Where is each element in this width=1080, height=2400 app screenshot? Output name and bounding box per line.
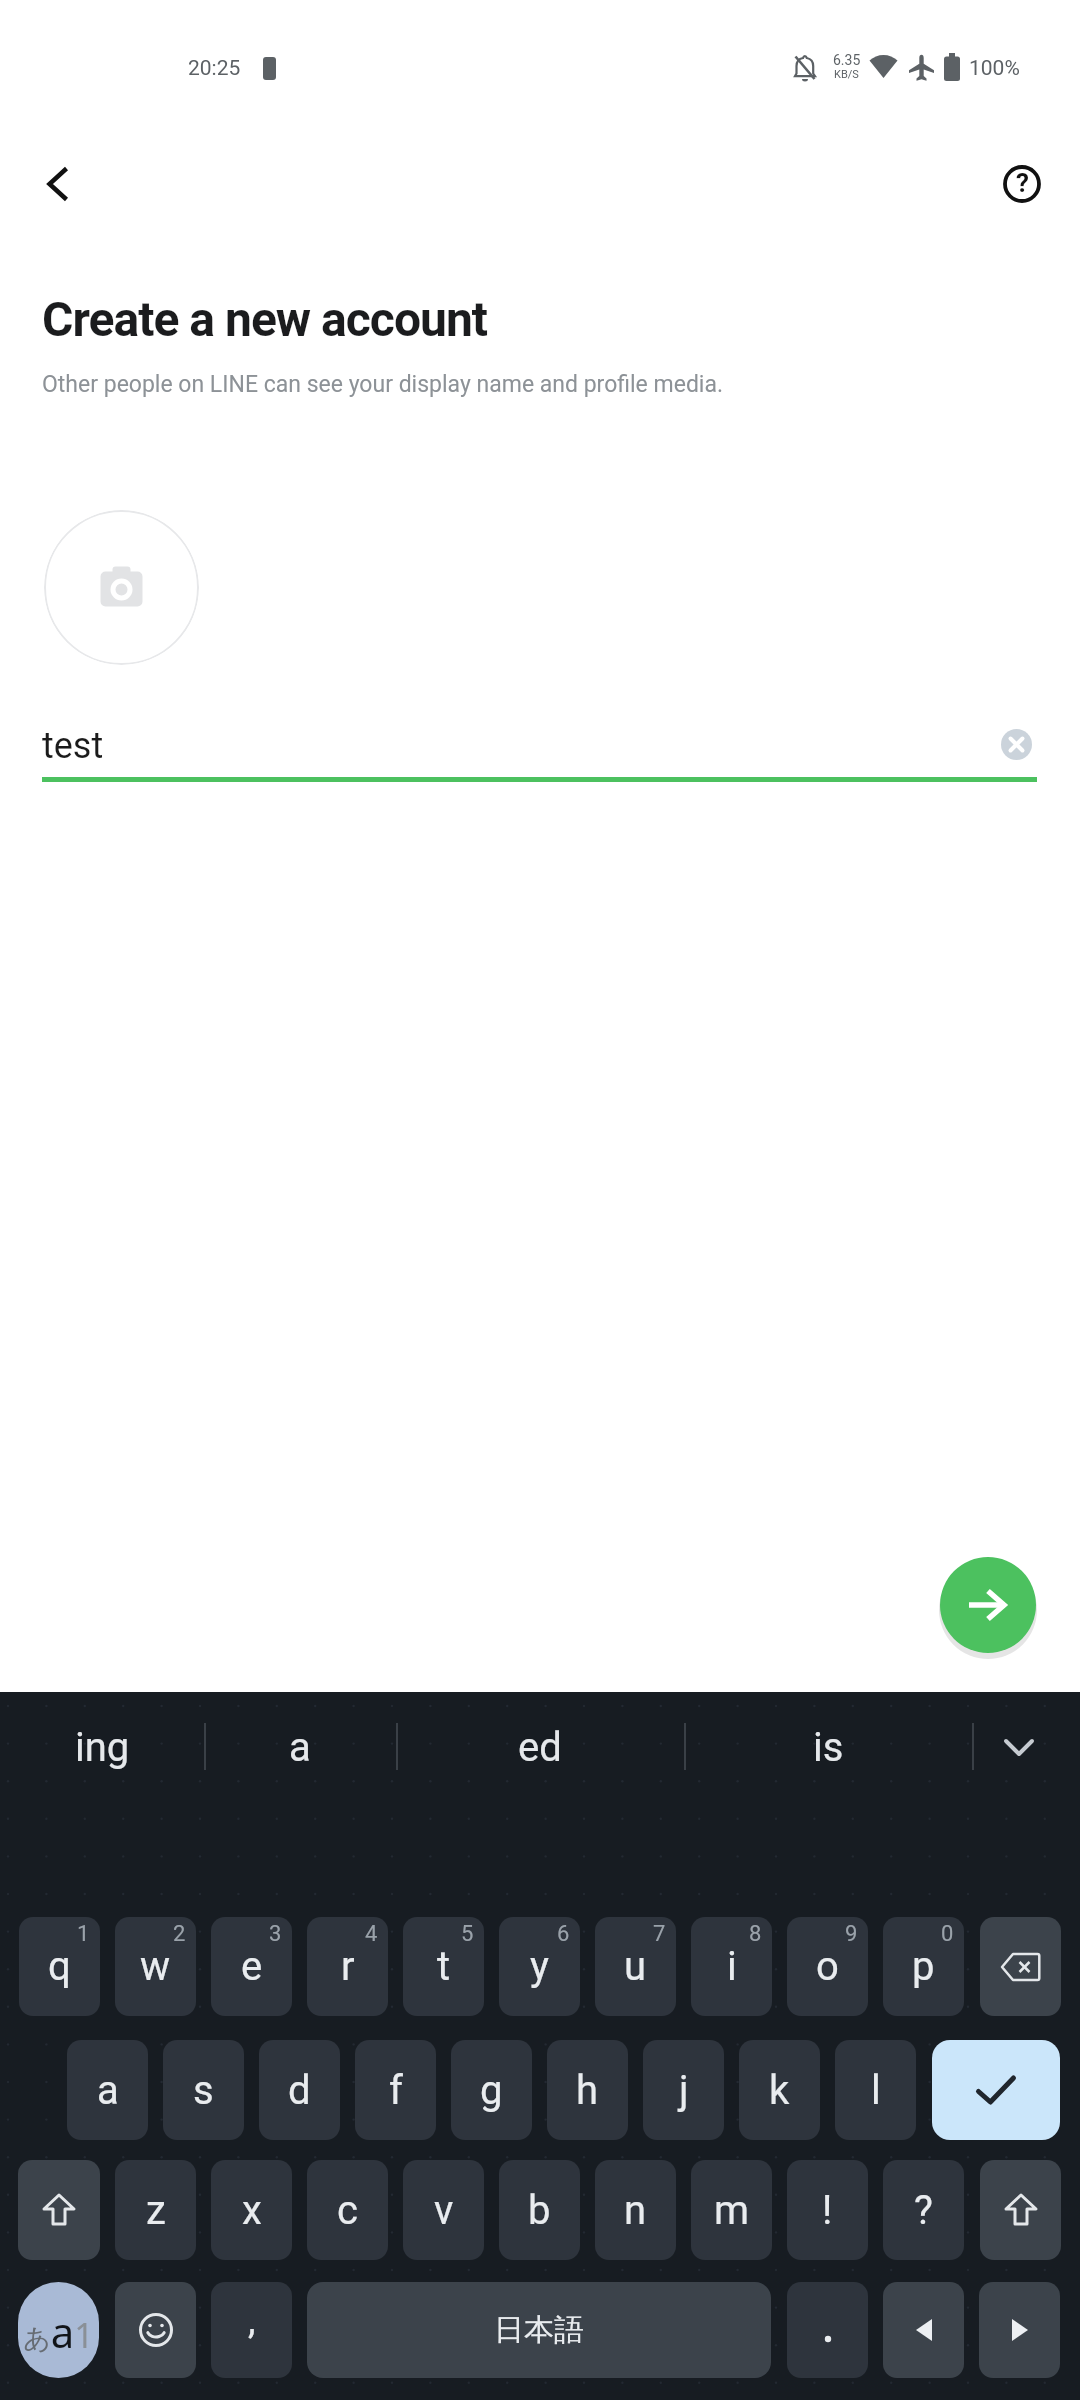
button[interactable] bbox=[972, 1715, 1080, 1779]
button[interactable]: ? bbox=[988, 150, 1056, 218]
staticText: 8 bbox=[749, 1921, 762, 1947]
staticText: 2 bbox=[173, 1921, 186, 1947]
button[interactable]: e bbox=[211, 1917, 292, 2016]
button[interactable]: b bbox=[499, 2160, 580, 2260]
staticText: i bbox=[727, 1943, 737, 1990]
button[interactable]: i bbox=[691, 1917, 772, 2016]
staticText: 0 bbox=[941, 1921, 954, 1947]
staticText: d bbox=[288, 2067, 311, 2114]
staticText: j bbox=[679, 2067, 689, 2114]
staticText: e bbox=[241, 1943, 263, 1990]
staticText: c bbox=[337, 2187, 358, 2234]
staticText: v bbox=[434, 2187, 454, 2234]
staticText: m bbox=[714, 2187, 750, 2234]
staticText: a bbox=[97, 2067, 119, 2114]
staticText: a bbox=[289, 1724, 311, 1771]
staticText: n bbox=[624, 2187, 647, 2234]
staticText: p bbox=[912, 1943, 935, 1990]
button[interactable] bbox=[115, 2282, 196, 2378]
button[interactable]: q bbox=[19, 1917, 100, 2016]
button[interactable] bbox=[44, 510, 199, 665]
staticText: 20:25 bbox=[188, 56, 241, 81]
staticText: ing bbox=[75, 1724, 130, 1771]
staticText: z bbox=[146, 2187, 166, 2234]
staticText: ed bbox=[518, 1724, 562, 1771]
button[interactable]: u bbox=[595, 1917, 676, 2016]
button[interactable]: r bbox=[307, 1917, 388, 2016]
button[interactable]: v bbox=[403, 2160, 484, 2260]
staticText: 9 bbox=[845, 1921, 858, 1947]
staticText: 6 bbox=[557, 1921, 570, 1947]
staticText: 5 bbox=[461, 1921, 474, 1947]
staticText: q bbox=[48, 1943, 71, 1990]
button[interactable]: ? bbox=[883, 2160, 964, 2260]
staticText: test bbox=[42, 725, 104, 767]
staticText: b bbox=[528, 2187, 551, 2234]
button[interactable]: ! bbox=[787, 2160, 868, 2260]
button[interactable] bbox=[1001, 729, 1032, 760]
button[interactable]: c bbox=[307, 2160, 388, 2260]
staticText: l bbox=[871, 2067, 881, 2114]
button[interactable]: m bbox=[691, 2160, 772, 2260]
button[interactable]: a bbox=[204, 1715, 396, 1779]
button[interactable]: g bbox=[451, 2040, 532, 2140]
button[interactable]: あa1 bbox=[18, 2282, 99, 2378]
staticText: 100% bbox=[969, 56, 1020, 81]
staticText: ? bbox=[914, 2187, 933, 2234]
button[interactable]: o bbox=[787, 1917, 868, 2016]
button[interactable] bbox=[18, 2160, 100, 2260]
staticText: Create a new account bbox=[42, 291, 488, 347]
button[interactable]: ing bbox=[0, 1715, 204, 1779]
button[interactable] bbox=[883, 2282, 964, 2378]
button[interactable] bbox=[980, 2160, 1061, 2260]
button[interactable]: z bbox=[115, 2160, 196, 2260]
button[interactable]: 日本語 bbox=[307, 2282, 771, 2378]
staticText: あa1 bbox=[23, 2303, 94, 2360]
button[interactable] bbox=[24, 150, 92, 218]
button[interactable] bbox=[980, 1917, 1061, 2016]
staticText: x bbox=[242, 2187, 262, 2234]
button[interactable]: t bbox=[403, 1917, 484, 2016]
button[interactable]: w bbox=[115, 1917, 196, 2016]
staticText: s bbox=[193, 2067, 214, 2114]
button[interactable] bbox=[787, 2282, 868, 2378]
staticText: h bbox=[576, 2067, 599, 2114]
staticText: 6.35 bbox=[833, 52, 861, 68]
button[interactable]: k bbox=[739, 2040, 820, 2140]
staticText: , bbox=[248, 2298, 256, 2343]
staticText: 4 bbox=[365, 1921, 378, 1947]
staticText: t bbox=[437, 1943, 451, 1990]
staticText: ? bbox=[1016, 168, 1029, 198]
staticText: is bbox=[813, 1724, 844, 1771]
button[interactable]: f bbox=[355, 2040, 436, 2140]
staticText: 3 bbox=[269, 1921, 282, 1947]
button[interactable]: , bbox=[211, 2282, 292, 2378]
staticText: r bbox=[341, 1943, 355, 1990]
staticText: Other people on LINE can see your displa… bbox=[42, 371, 724, 398]
button[interactable]: p bbox=[883, 1917, 964, 2016]
staticText: ! bbox=[822, 2187, 833, 2234]
button[interactable]: h bbox=[547, 2040, 628, 2140]
button[interactable]: ed bbox=[396, 1715, 684, 1779]
button[interactable] bbox=[940, 1557, 1036, 1653]
button[interactable]: n bbox=[595, 2160, 676, 2260]
button[interactable]: y bbox=[499, 1917, 580, 2016]
button[interactable] bbox=[979, 2282, 1060, 2378]
button[interactable]: l bbox=[835, 2040, 916, 2140]
staticText: 日本語 bbox=[494, 2311, 584, 2349]
button[interactable]: j bbox=[643, 2040, 724, 2140]
button[interactable]: a bbox=[67, 2040, 148, 2140]
staticText: w bbox=[140, 1943, 171, 1990]
button[interactable]: x bbox=[211, 2160, 292, 2260]
button[interactable] bbox=[932, 2040, 1060, 2140]
button[interactable]: is bbox=[684, 1715, 972, 1779]
staticText: KB/S bbox=[834, 68, 859, 81]
staticText: u bbox=[624, 1943, 647, 1990]
button[interactable]: d bbox=[259, 2040, 340, 2140]
button[interactable]: s bbox=[163, 2040, 244, 2140]
staticText: g bbox=[480, 2067, 503, 2114]
staticText: k bbox=[769, 2067, 790, 2114]
staticText: o bbox=[816, 1943, 839, 1990]
staticText: y bbox=[530, 1943, 549, 1990]
staticText: 7 bbox=[653, 1921, 666, 1947]
